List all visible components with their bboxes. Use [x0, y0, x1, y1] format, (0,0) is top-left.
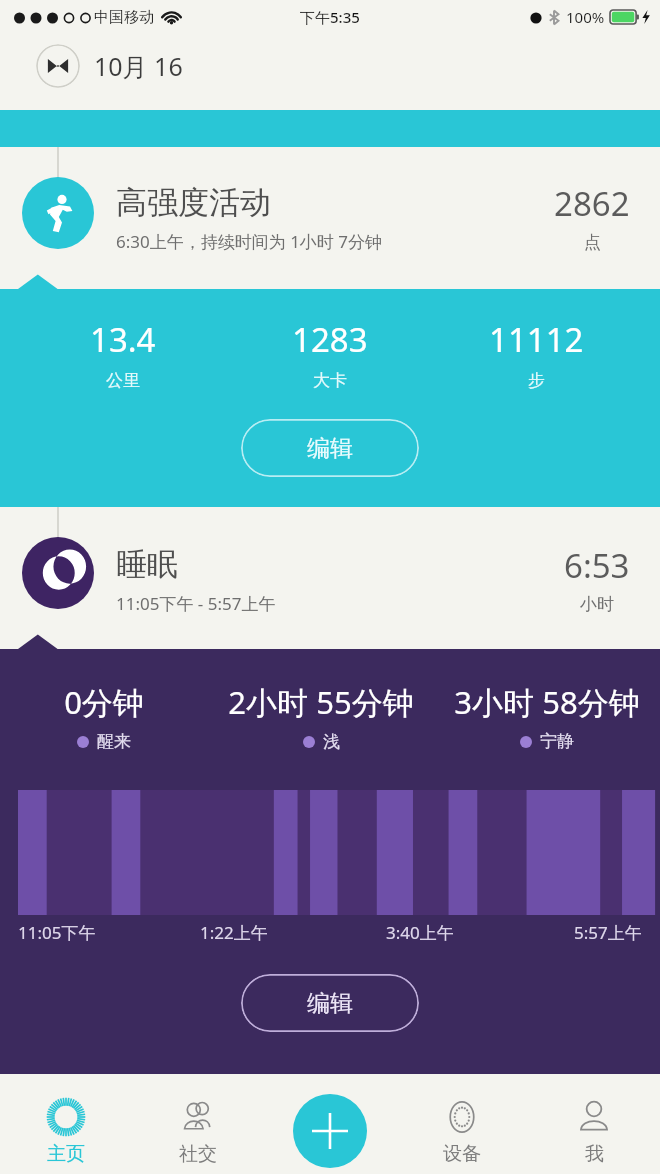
staticText: 11112 [489, 317, 584, 362]
staticText: 0分钟 [64, 681, 144, 723]
staticText: 宁静 [540, 731, 574, 752]
staticText: 步 [528, 370, 545, 391]
staticText: 13.4 [90, 317, 156, 362]
staticText: 6:30上午，持续时间为 1小时 7分钟 [116, 230, 383, 253]
staticText: 点 [584, 232, 601, 253]
staticText: 1283 [292, 317, 368, 362]
staticText: 浅 [323, 731, 340, 752]
staticText: 主页 [47, 1142, 85, 1166]
button[interactable]: 我 [528, 1088, 660, 1174]
staticText: 下午5:35 [300, 7, 360, 27]
staticText: 社交 [179, 1142, 217, 1166]
button[interactable]: Add [293, 1094, 367, 1168]
staticText: 小时 [580, 594, 614, 615]
staticText: 编辑 [307, 989, 353, 1018]
button[interactable]: Misfit [36, 44, 80, 88]
button[interactable]: 主页 [0, 1088, 132, 1174]
staticText: 我 [585, 1142, 604, 1166]
staticText: 高强度活动 [116, 183, 271, 222]
staticText: 11:05下午 [18, 921, 96, 944]
staticText: 1:22上午 [200, 921, 268, 944]
staticText: 编辑 [307, 434, 353, 463]
staticText: 5:57上午 [574, 921, 642, 944]
staticText: 3:40上午 [386, 921, 454, 944]
button[interactable]: High intensity activity [22, 177, 94, 249]
staticText: 2862 [554, 181, 630, 226]
button[interactable]: 设备 [396, 1088, 528, 1174]
staticText: 大卡 [313, 370, 347, 391]
staticText: 中国移动 [94, 8, 154, 27]
staticText: 2小时 55分钟 [228, 681, 414, 723]
staticText: 设备 [443, 1142, 481, 1166]
button[interactable]: Sleep [22, 537, 94, 609]
button[interactable]: 社交 [132, 1088, 264, 1174]
staticText: 公里 [106, 370, 140, 391]
staticText: 睡眠 [116, 545, 178, 584]
staticText: 11:05下午 - 5:57上午 [116, 592, 276, 615]
staticText: 醒来 [97, 731, 131, 752]
staticText: 10月 16 [94, 49, 183, 83]
staticText: 100% [566, 7, 605, 27]
button[interactable]: 编辑 [241, 419, 419, 477]
button[interactable]: 编辑 [241, 974, 419, 1032]
staticText: 3小时 58分钟 [454, 681, 640, 723]
staticText: 6:53 [564, 543, 630, 588]
